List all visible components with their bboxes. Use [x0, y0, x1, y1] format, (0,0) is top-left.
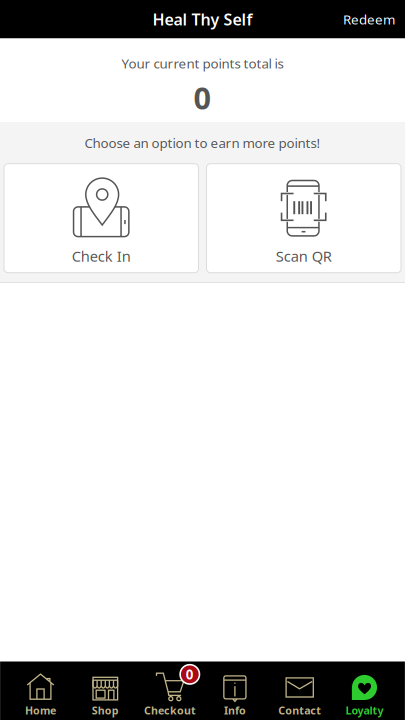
- staticText: Check In: [72, 246, 131, 266]
- staticText: Choose an option to earn more points!: [84, 134, 320, 152]
- button[interactable]: Check In: [4, 164, 198, 273]
- staticText: Home: [25, 703, 56, 717]
- staticText: Redeem: [343, 10, 395, 28]
- button[interactable]: Scan QR: [206, 164, 401, 273]
- staticText: 0: [186, 665, 194, 683]
- button[interactable]: Contact: [267, 661, 332, 720]
- button[interactable]: Home: [8, 661, 73, 720]
- button[interactable]: Checkout: [138, 661, 202, 720]
- staticText: Heal Thy Self: [152, 9, 252, 30]
- button[interactable]: Shop: [73, 661, 138, 720]
- staticText: Your current points total is: [121, 54, 283, 72]
- staticText: 0: [193, 77, 211, 118]
- staticText: Loyalty: [345, 703, 383, 717]
- staticText: Info: [224, 703, 246, 717]
- staticText: Checkout: [144, 703, 196, 717]
- button[interactable]: Info: [202, 661, 267, 720]
- staticText: Shop: [92, 703, 119, 717]
- staticText: Contact: [278, 703, 321, 717]
- staticText: Scan QR: [276, 246, 332, 266]
- button[interactable]: Loyalty: [332, 661, 397, 720]
- button[interactable]: Redeem: [339, 0, 399, 38]
